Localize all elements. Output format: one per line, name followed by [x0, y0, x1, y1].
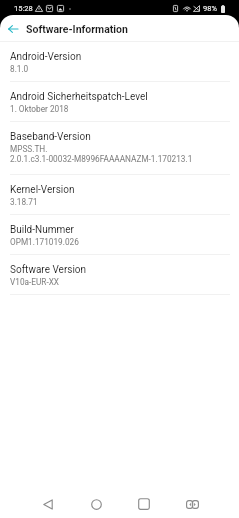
button[interactable]: Software Version: [0, 255, 239, 295]
staticText: 8.1.0: [10, 64, 29, 74]
staticText: Android Sicherheitspatch-Level: [10, 91, 148, 103]
button[interactable]: Baseband-Version: [0, 122, 239, 175]
button[interactable]: Home: [79, 487, 113, 518]
button[interactable]: Kernel-Version: [0, 175, 239, 215]
staticText: 1. Oktober 2018: [10, 104, 69, 114]
button[interactable]: Recent apps: [127, 487, 161, 518]
button[interactable]: Android-Version: [0, 42, 239, 82]
staticText: MPSS.TH.: [10, 144, 48, 154]
staticText: Android-Version: [10, 51, 82, 63]
staticText: OPM1.171019.026: [10, 237, 79, 247]
staticText: Software Version: [10, 264, 87, 276]
button[interactable]: Build-Nummer: [0, 215, 239, 255]
button[interactable]: Back: [31, 487, 65, 518]
staticText: Baseband-Version: [10, 131, 91, 143]
staticText: V10a-EUR-XX: [10, 277, 60, 287]
staticText: Software-Information: [26, 23, 128, 35]
staticText: 98%: [203, 4, 217, 13]
staticText: Kernel-Version: [10, 184, 75, 196]
button[interactable]: Split screen: [175, 487, 209, 518]
staticText: Build-Nummer: [10, 224, 74, 236]
staticText: 2.0.1.c3.1-00032-M8996FAAAANAZM-1.170213…: [10, 154, 193, 164]
button[interactable]: Back: [0, 17, 26, 41]
button[interactable]: Android Sicherheitspatch-Level: [0, 82, 239, 122]
staticText: 3.18.71: [10, 197, 38, 207]
staticText: 15:28: [14, 4, 33, 13]
